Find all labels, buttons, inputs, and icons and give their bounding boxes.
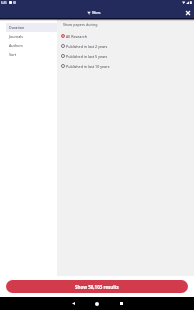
button[interactable]: Authors (6, 41, 57, 50)
staticText: Authors (9, 43, 23, 48)
staticText: 6:35 (1, 1, 7, 5)
staticText: Duration (9, 25, 25, 30)
button[interactable]: Recents (115, 297, 128, 310)
button[interactable]: Home (90, 297, 103, 310)
button[interactable]: Duration (6, 23, 57, 32)
staticText: Published in last 2 years (66, 44, 108, 49)
button[interactable]: All Research (61, 31, 194, 41)
staticText: Journals (9, 34, 24, 39)
staticText: All Research (66, 34, 87, 39)
staticText: Published in last 5 years (66, 54, 108, 59)
button[interactable]: Published in last 5 years (61, 51, 194, 61)
staticText: Show papers during (63, 22, 98, 27)
staticText: Sort (9, 52, 17, 57)
button[interactable]: Sort (6, 50, 57, 59)
button[interactable]: Close (183, 8, 192, 17)
staticText: Show 58,103 results (75, 284, 119, 290)
button[interactable]: Journals (6, 32, 57, 41)
button[interactable]: Published in last 10 years (61, 61, 194, 71)
button[interactable]: Back (67, 297, 80, 310)
button[interactable]: Published in last 2 years (61, 41, 194, 51)
staticText: Published in last 10 years (66, 64, 110, 69)
button[interactable]: Show 58,103 results (6, 280, 188, 293)
staticText: Filters (92, 11, 101, 15)
